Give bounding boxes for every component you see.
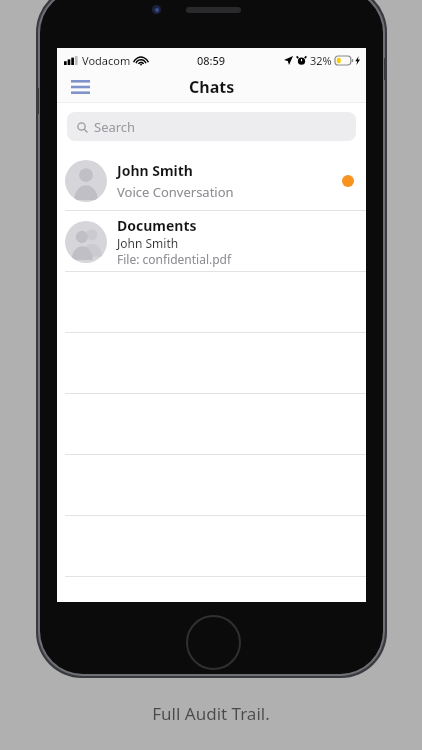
button[interactable]: Menu [65, 72, 95, 102]
button[interactable] [57, 516, 366, 577]
button[interactable]: Documents [57, 211, 366, 272]
button[interactable] [57, 394, 366, 455]
staticText: 32% [310, 53, 332, 68]
staticText: File: confidential.pdf [117, 251, 232, 267]
button[interactable]: John Smith [57, 150, 366, 211]
staticText: Voice Conversation [117, 183, 234, 201]
button[interactable] [57, 333, 366, 394]
staticText: 08:59 [197, 53, 226, 68]
staticText: Search [94, 118, 136, 136]
staticText: John Smith [117, 161, 193, 180]
staticText: Full Audit Trail. [152, 702, 270, 725]
staticText: Chats [189, 76, 235, 98]
staticText: Documents [117, 216, 197, 235]
button[interactable] [57, 272, 366, 333]
button[interactable] [57, 455, 366, 516]
button[interactable]: Search [67, 112, 356, 141]
staticText: Vodacom [82, 53, 131, 68]
staticText: John Smith [117, 235, 179, 251]
